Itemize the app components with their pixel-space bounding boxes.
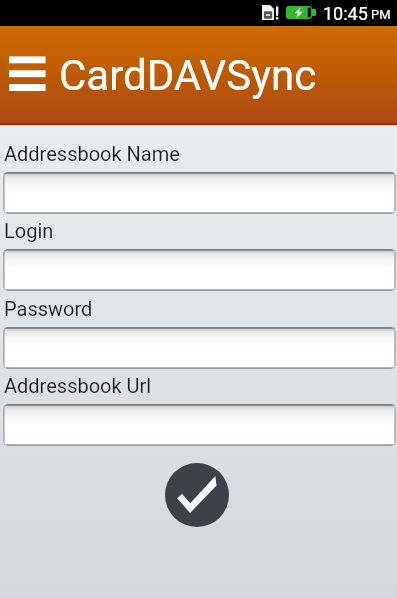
staticText: 10:45 xyxy=(323,3,368,24)
button[interactable] xyxy=(3,327,396,369)
button[interactable]: Save xyxy=(165,463,229,527)
button[interactable] xyxy=(3,172,396,214)
staticText: Password xyxy=(4,297,93,320)
button[interactable] xyxy=(3,404,396,446)
button[interactable] xyxy=(3,249,396,291)
staticText: CardDAVSync xyxy=(59,51,317,100)
staticText: PM xyxy=(371,7,391,22)
staticText: ! xyxy=(275,4,280,23)
staticText: Addressbook Name xyxy=(4,142,180,165)
staticText: Addressbook Url xyxy=(4,374,152,397)
button[interactable]: Open navigation menu xyxy=(0,44,54,106)
staticText: Login xyxy=(4,219,54,242)
